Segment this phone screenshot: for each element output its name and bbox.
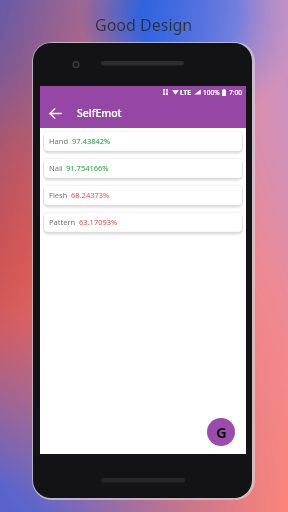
staticText: LTE [180, 88, 191, 97]
button[interactable]: Google search [207, 418, 235, 446]
button[interactable]: Hand [43, 130, 243, 154]
staticText: 100% [203, 88, 220, 97]
staticText: 91.754166% [66, 163, 109, 173]
staticText: Good Design [95, 14, 193, 36]
staticText: G [216, 422, 227, 442]
staticText: 68.24373% [71, 190, 110, 200]
staticText: 63.17093% [79, 217, 118, 227]
button[interactable]: Nail [43, 157, 243, 181]
staticText: 97.43842% [72, 136, 111, 146]
button[interactable]: Back [44, 102, 66, 124]
staticText: Pattern [49, 217, 76, 227]
staticText: 7:00 [229, 88, 242, 97]
button[interactable]: Flesh [43, 184, 243, 208]
button[interactable]: Pattern [43, 211, 243, 235]
staticText: Flesh [49, 190, 68, 200]
staticText: Nail [49, 163, 63, 173]
staticText: SelfEmot [77, 106, 122, 120]
staticText: Hand [49, 136, 69, 146]
